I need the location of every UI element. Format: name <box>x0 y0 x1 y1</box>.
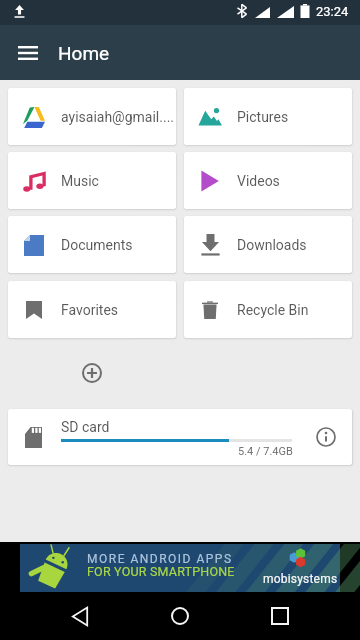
staticText: Downloads <box>237 237 307 253</box>
staticText: 23:24 <box>316 4 349 19</box>
staticText: Pictures <box>237 109 289 125</box>
button[interactable] <box>8 88 176 145</box>
button[interactable]: Recent apps <box>256 594 304 638</box>
staticText: FOR YOUR SMARTPHONE <box>87 564 235 579</box>
button[interactable]: Advertisement: More Android apps for you… <box>20 544 340 592</box>
button[interactable] <box>184 216 352 273</box>
button[interactable] <box>8 152 176 209</box>
staticText: Favorites <box>61 302 119 318</box>
button[interactable] <box>8 216 176 273</box>
button[interactable]: Open navigation menu <box>8 37 48 69</box>
button[interactable] <box>184 152 352 209</box>
staticText: 5.4 / 7.4GB <box>238 445 293 458</box>
staticText: Home <box>58 42 110 64</box>
staticText: Documents <box>61 237 133 253</box>
button[interactable]: Home <box>156 594 204 638</box>
staticText: mobisystems <box>263 572 338 586</box>
button[interactable]: Add storage location <box>76 357 108 389</box>
staticText: Recycle Bin <box>237 302 309 318</box>
button[interactable]: Back <box>56 594 104 638</box>
staticText: Music <box>61 173 99 189</box>
button[interactable] <box>184 88 352 145</box>
staticText: SD card <box>61 419 110 435</box>
button[interactable] <box>8 281 176 338</box>
button[interactable]: SD card <box>8 409 352 465</box>
button[interactable] <box>184 281 352 338</box>
staticText: Videos <box>237 173 280 189</box>
staticText: MORE ANDROID APPS <box>87 552 233 566</box>
staticText: ayisaiah@gmail.... <box>61 109 175 125</box>
button[interactable]: Storage information <box>314 425 338 449</box>
